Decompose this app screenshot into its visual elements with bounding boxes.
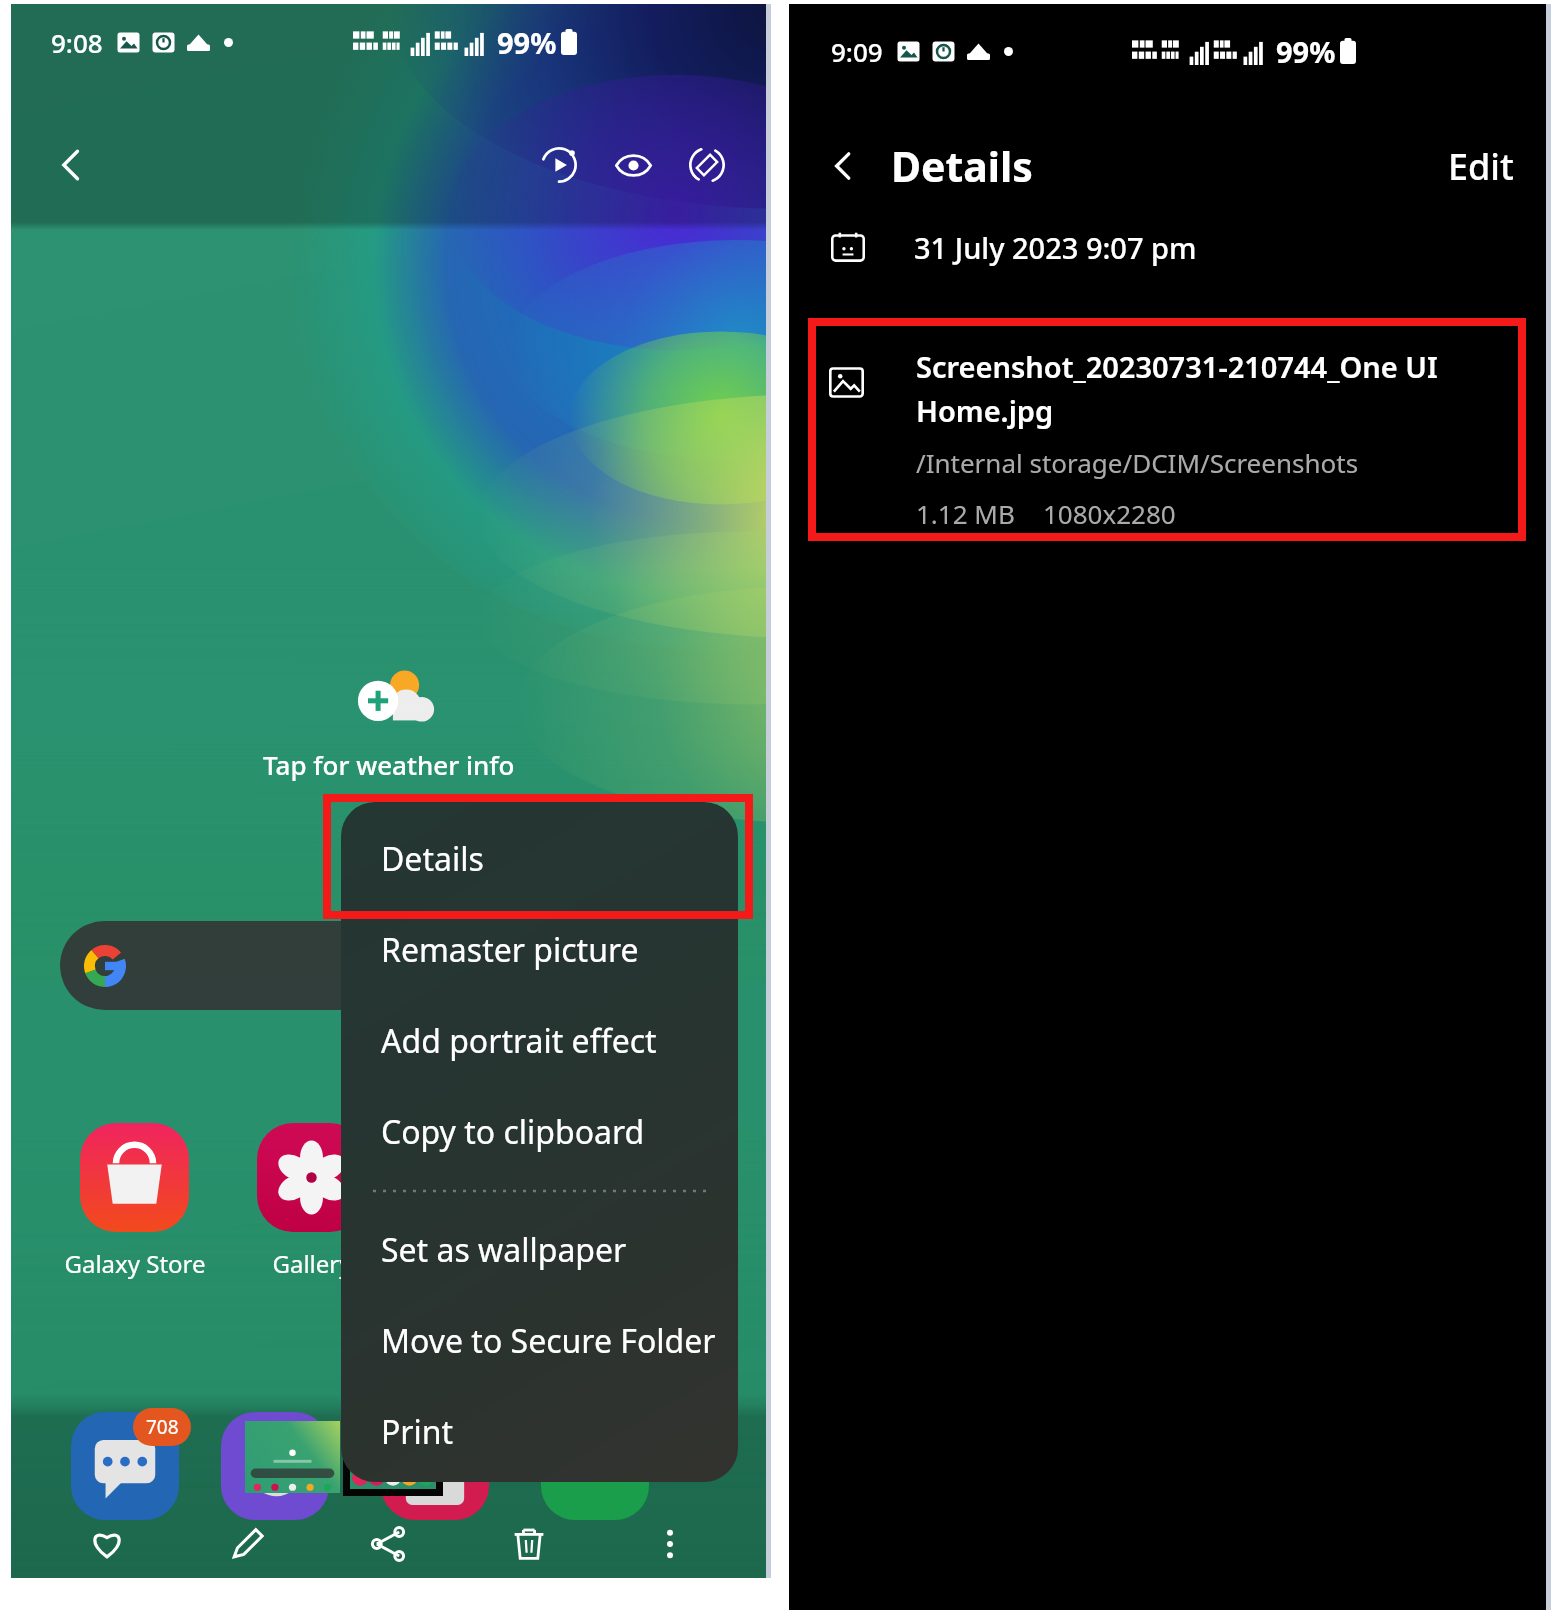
staticText: 31 July 2023 9:07 pm <box>914 228 1197 267</box>
button[interactable]: Copy to clipboard <box>341 1086 738 1177</box>
button[interactable]: Print <box>341 1386 738 1477</box>
staticText: 9:09 <box>831 34 883 69</box>
staticText: Details <box>381 837 484 881</box>
staticText: Details <box>891 138 1033 194</box>
staticText: 1080x2280 <box>1043 496 1176 531</box>
staticText: /Internal storage/DCIM/Screenshots <box>916 445 1359 480</box>
button[interactable]: Bixby Vision <box>605 137 661 193</box>
button[interactable]: Delete <box>458 1508 599 1578</box>
button[interactable]: Remaster picture <box>341 904 738 995</box>
button[interactable]: Gallery <box>235 1123 388 1280</box>
staticText: Screenshot_20230731-210744_One UI Home.j… <box>916 347 1438 430</box>
button[interactable]: More options <box>599 1508 740 1578</box>
staticText: 1.12 MB <box>916 496 1015 531</box>
button[interactable]: Details <box>341 813 738 904</box>
button[interactable]: Camera <box>381 1412 489 1520</box>
staticText: Edit <box>1448 142 1514 191</box>
button[interactable]: Phone <box>541 1412 649 1520</box>
button[interactable]: 31 July 2023 9:07 pm <box>789 210 1546 284</box>
button[interactable]: Move to Secure Folder <box>341 1295 738 1386</box>
button[interactable]: Galaxy Store <box>58 1123 211 1280</box>
staticText: 99% <box>497 23 557 62</box>
staticText: Move to Secure Folder <box>381 1319 716 1363</box>
button[interactable]: Share <box>317 1508 458 1578</box>
button[interactable]: Remaster <box>679 137 735 193</box>
button[interactable]: Edit <box>177 1508 317 1578</box>
button[interactable]: Set as wallpaper <box>341 1204 738 1295</box>
staticText: Copy to clipboard <box>381 1110 645 1154</box>
staticText: Set as wallpaper <box>381 1228 627 1272</box>
staticText: 708 <box>146 1414 179 1440</box>
staticText: Print <box>381 1410 454 1454</box>
staticText: 9:08 <box>51 25 103 60</box>
button[interactable]: Add portrait effect <box>341 995 738 1086</box>
staticText: 99% <box>1276 32 1336 71</box>
button[interactable]: Samsung Internet <box>221 1412 329 1520</box>
button[interactable]: Tap for weather info <box>11 664 766 782</box>
staticText: Add portrait effect <box>381 1019 657 1063</box>
button[interactable]: Messages <box>71 1412 179 1520</box>
staticText: Galaxy Store <box>64 1247 206 1280</box>
button[interactable]: Edit <box>1434 134 1528 199</box>
button[interactable]: Back <box>43 137 99 193</box>
button[interactable]: Favorite <box>37 1508 177 1578</box>
staticText: Tap for weather info <box>263 747 515 782</box>
button[interactable]: Motion photo <box>531 137 587 193</box>
button[interactable] <box>60 921 716 1010</box>
staticText: Remaster picture <box>381 928 639 972</box>
staticText: Gallery <box>272 1247 352 1280</box>
button[interactable]: Back <box>817 140 869 192</box>
button[interactable]: Screenshot_20230731-210744_One UI Home.j… <box>829 347 1519 531</box>
